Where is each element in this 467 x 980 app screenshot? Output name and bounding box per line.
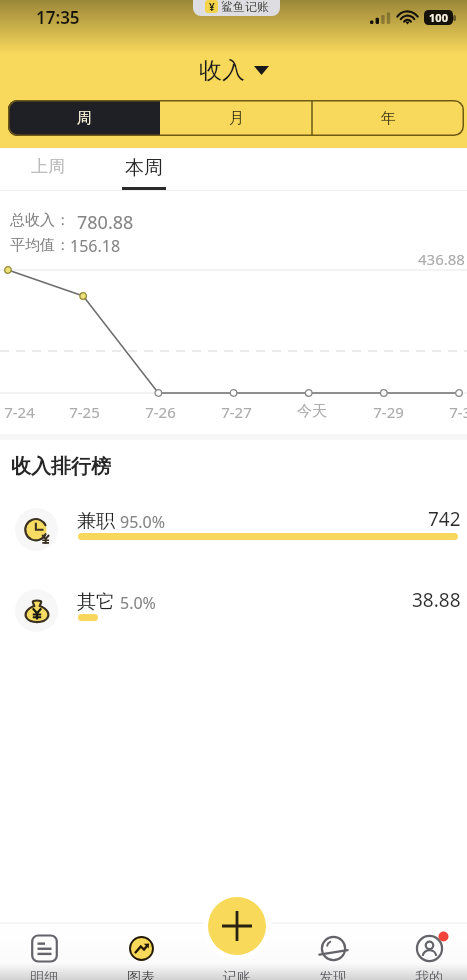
staticText: 年	[381, 109, 396, 128]
button[interactable]: 年	[312, 100, 464, 136]
staticText: 95.0%	[120, 511, 166, 533]
staticText: 7-27	[221, 402, 252, 422]
staticText: 上周	[31, 156, 65, 177]
staticText: 38.88	[412, 587, 461, 613]
staticText: 周	[77, 109, 92, 128]
staticText: 780.88	[77, 210, 134, 235]
button[interactable]: 记账	[208, 897, 266, 955]
button[interactable]: 其它	[0, 585, 467, 635]
staticText: 7-30	[449, 402, 467, 422]
staticText: 收入排行榜	[11, 454, 111, 479]
staticText: 兼职	[77, 509, 115, 533]
staticText: 明细	[30, 969, 58, 980]
staticText: 鲨鱼记账	[221, 0, 269, 14]
staticText: 17:35	[36, 6, 80, 29]
staticText: 总收入：	[10, 211, 70, 230]
staticText: 我的	[415, 969, 443, 980]
button[interactable]: 图表	[95, 924, 187, 980]
staticText: 月	[229, 109, 244, 128]
button[interactable]: 周	[8, 100, 160, 136]
staticText: ¥	[209, 0, 215, 13]
staticText: 其它	[77, 590, 115, 614]
staticText: 742	[428, 506, 461, 532]
staticText: 436.88	[418, 249, 465, 269]
button[interactable]: 明细	[0, 924, 90, 980]
button[interactable]: 兼职	[0, 504, 467, 554]
button[interactable]: 我的	[383, 924, 467, 980]
staticText: 5.0%	[120, 592, 156, 614]
staticText: 图表	[127, 969, 155, 980]
staticText: 7-26	[145, 402, 176, 422]
button[interactable]: 上周	[8, 148, 88, 191]
staticText: 平均值：	[10, 236, 70, 255]
staticText: 发现	[319, 969, 347, 980]
staticText: 记账	[223, 969, 251, 980]
staticText: 本周	[125, 156, 163, 180]
staticText: 收入	[199, 56, 245, 85]
button[interactable]: 本周	[104, 148, 184, 191]
button[interactable]: 记账	[191, 924, 283, 980]
staticText: 7-29	[373, 402, 404, 422]
staticText: 7-24	[4, 402, 35, 422]
staticText: 156.18	[70, 235, 121, 257]
staticText: 今天	[297, 402, 327, 421]
staticText: 100	[429, 10, 448, 25]
staticText: 7-25	[69, 402, 100, 422]
button[interactable]: 发现	[287, 924, 379, 980]
button[interactable]: 月	[160, 100, 312, 136]
